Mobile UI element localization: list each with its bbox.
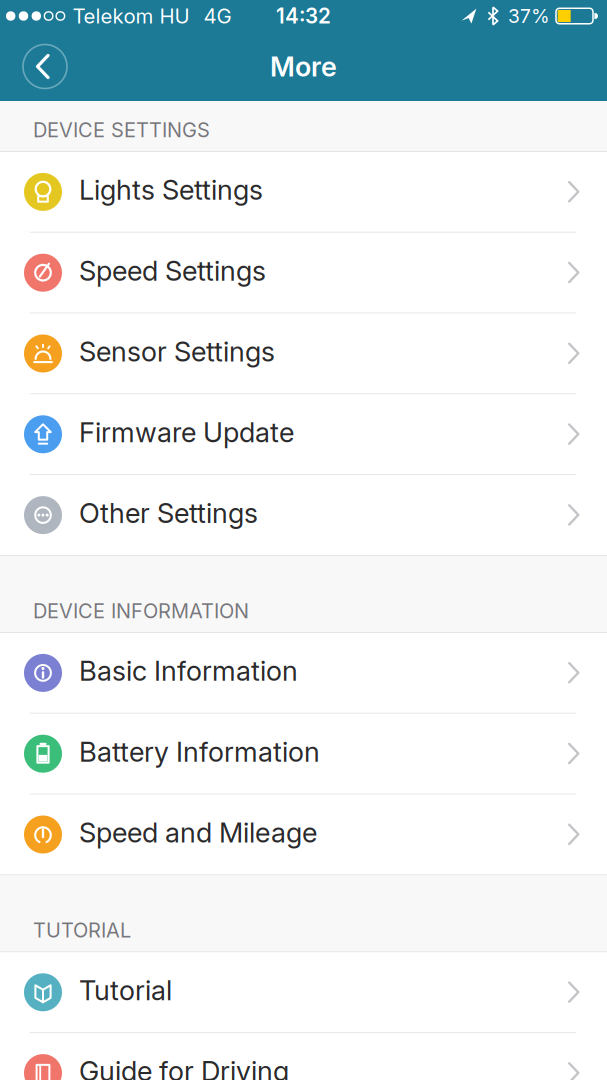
button[interactable]: Speed Settings xyxy=(0,233,607,313)
staticText: Tutorial xyxy=(79,974,172,1007)
staticText: Telekom HU xyxy=(73,4,190,28)
button[interactable]: Tutorial xyxy=(0,952,607,1032)
button[interactable]: Other Settings xyxy=(0,475,607,555)
button[interactable]: Basic Information xyxy=(0,633,607,713)
staticText: DEVICE SETTINGS xyxy=(33,118,210,142)
staticText: Speed Settings xyxy=(79,254,266,287)
staticText: 14:32 xyxy=(276,3,331,28)
button[interactable]: Speed and Mileage xyxy=(0,795,607,874)
staticText: Lights Settings xyxy=(79,173,263,206)
staticText: 37% xyxy=(508,4,550,28)
staticText: TUTORIAL xyxy=(33,918,131,942)
staticText: 4G xyxy=(204,4,232,28)
button[interactable]: Lights Settings xyxy=(0,152,607,232)
button[interactable]: Battery Information xyxy=(0,714,607,794)
button[interactable]: Sensor Settings xyxy=(0,314,607,393)
staticText: More xyxy=(270,50,337,83)
staticText: DEVICE INFORMATION xyxy=(33,599,249,623)
button[interactable]: Firmware Update xyxy=(0,394,607,474)
staticText: Other Settings xyxy=(79,497,258,530)
staticText: Speed and Mileage xyxy=(79,816,317,849)
button[interactable]: Back xyxy=(23,44,67,88)
button[interactable]: Guide for Driving xyxy=(0,1033,607,1080)
staticText: Firmware Update xyxy=(79,416,294,449)
staticText: Guide for Driving xyxy=(79,1055,289,1080)
staticText: Battery Information xyxy=(79,735,320,768)
staticText: Sensor Settings xyxy=(79,335,275,368)
staticText: Basic Information xyxy=(79,654,298,687)
